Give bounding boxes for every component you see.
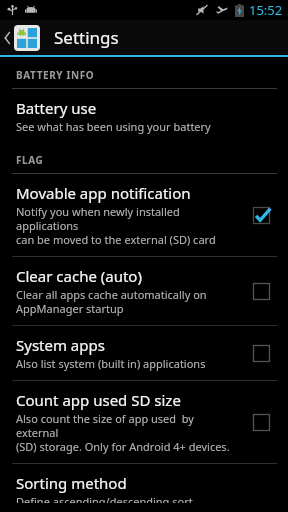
staticText: Notify you when newly installed applicat… [16,204,238,247]
button[interactable]: Movable app notification [0,174,288,257]
staticText: Define ascending/descending sort [16,494,193,503]
button[interactable]: Unchecked [248,278,274,304]
staticText: Also count the size of app used by exter… [16,411,238,454]
button[interactable]: Sorting method [0,464,288,512]
staticText: BATTERY INFO [16,68,95,82]
staticText: Movable app notification [16,183,191,203]
staticText: Clear cache (auto) [16,266,142,286]
staticText: System apps [16,335,105,355]
button[interactable]: System apps [0,326,288,381]
staticText: Settings [54,26,119,49]
button[interactable]: Checked [248,202,274,228]
staticText: Sorting method [16,473,127,493]
button[interactable]: Battery use [0,89,288,143]
staticText: FLAG [16,153,44,167]
staticText: See what has been using your battery [16,119,211,134]
button[interactable]: Unchecked [248,409,274,435]
staticText: Also list system (built in) applications [16,356,206,371]
staticText: Battery use [16,98,97,118]
button[interactable]: Navigate up [0,20,44,55]
staticText: Clear all apps cache automatically on Ap… [16,287,207,316]
button[interactable]: Unchecked [248,340,274,366]
staticText: 15:52 [249,1,283,19]
button[interactable]: Clear cache (auto) [0,257,288,326]
staticText: Count app used SD size [16,390,181,410]
button[interactable]: Count app used SD size [0,381,288,464]
